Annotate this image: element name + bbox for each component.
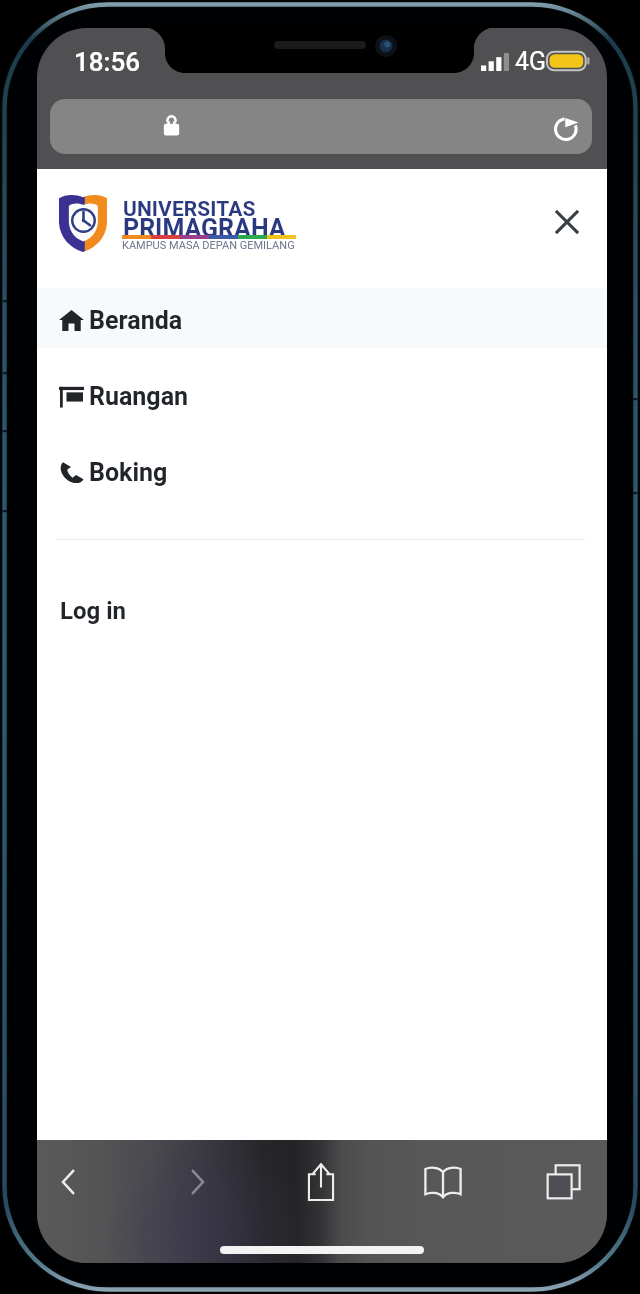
button[interactable]: Ruangan xyxy=(37,358,607,434)
button[interactable]: Boking xyxy=(37,434,607,510)
staticText: 4G xyxy=(515,47,547,76)
staticText: Log in xyxy=(60,597,127,625)
staticText: Beranda xyxy=(89,306,183,335)
staticText: Ruangan xyxy=(89,382,189,411)
button[interactable]: Log in xyxy=(37,585,607,637)
button[interactable]: Reload xyxy=(544,107,588,151)
staticText: 18:56 xyxy=(74,47,141,77)
button[interactable]: Tabs xyxy=(532,1150,596,1214)
button[interactable]: Back xyxy=(37,1150,101,1214)
button[interactable]: Reload xyxy=(50,99,592,154)
staticText: UNIVERSITAS xyxy=(123,197,256,222)
button[interactable]: Bookmarks xyxy=(411,1150,475,1214)
staticText: PRIMAGRAHA xyxy=(123,214,286,243)
button[interactable]: Beranda xyxy=(37,290,607,350)
staticText: Boking xyxy=(89,458,168,487)
button[interactable]: Share xyxy=(289,1150,353,1214)
button[interactable]: Close xyxy=(542,198,591,246)
button[interactable]: Forward xyxy=(165,1150,229,1214)
staticText: KAMPUS MASA DEPAN GEMILANG xyxy=(122,239,295,252)
